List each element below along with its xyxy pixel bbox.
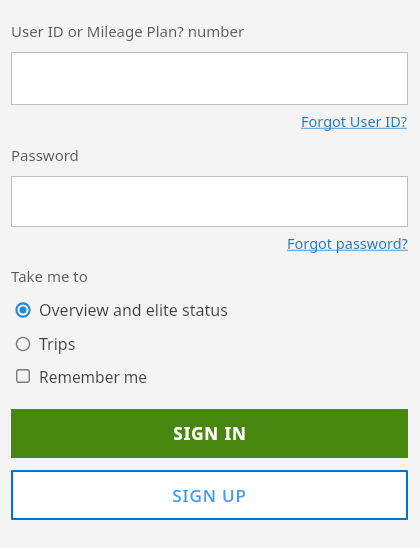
button[interactable]: Password input	[11, 176, 408, 227]
staticText: Remember me	[39, 366, 148, 387]
staticText: User ID or Mileage Plan? number	[11, 21, 245, 41]
button[interactable]: Trips	[11, 327, 408, 361]
staticText: SIGN UP	[172, 484, 247, 507]
staticText: Forgot password?	[287, 233, 408, 253]
staticText: Password	[11, 145, 79, 165]
staticText: Overview and elite status	[39, 299, 228, 321]
button[interactable]: Forgot User ID	[301, 111, 408, 131]
staticText: Take me to	[11, 266, 88, 286]
staticText: Trips	[39, 333, 76, 355]
button[interactable]: User ID or Mileage Plan number input	[11, 52, 408, 105]
button[interactable]: SIGN IN	[11, 409, 408, 458]
staticText: Forgot User ID?	[301, 111, 408, 131]
staticText: SIGN IN	[173, 422, 247, 445]
button[interactable]: Forgot password	[287, 233, 408, 253]
button[interactable]: Remember me	[11, 361, 408, 391]
button[interactable]: SIGN UP	[11, 470, 408, 520]
button[interactable]: Overview and elite status	[11, 293, 408, 327]
